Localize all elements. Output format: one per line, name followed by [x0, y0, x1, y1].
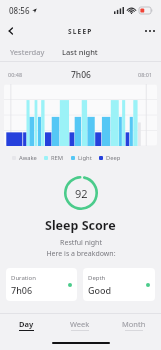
staticText: REM	[51, 154, 64, 162]
staticText: 08:01	[138, 71, 153, 78]
staticText: 00:48	[8, 71, 23, 78]
staticText: Restful night	[60, 238, 102, 248]
button[interactable]: Last night	[53, 42, 107, 62]
button[interactable]	[4, 84, 157, 146]
button[interactable]: Day	[0, 314, 53, 336]
staticText: 92	[75, 186, 88, 201]
button[interactable]: Week	[53, 314, 107, 336]
staticText: 7h06	[71, 69, 91, 81]
staticText: Good	[88, 284, 112, 296]
staticText: SLEEP	[68, 27, 93, 36]
staticText: Sleep Score	[45, 217, 116, 234]
button[interactable]: More options	[139, 20, 161, 42]
staticText: Day	[19, 319, 34, 329]
staticText: Light	[78, 154, 92, 162]
staticText: Awake	[19, 154, 37, 162]
staticText: Week	[70, 319, 90, 329]
staticText: Last night	[62, 47, 98, 57]
button[interactable]: Duration	[6, 268, 77, 301]
staticText: Deep	[106, 154, 121, 162]
staticText: Month	[122, 319, 146, 329]
staticText: Yesterday	[10, 47, 45, 57]
staticText: 08:56	[9, 5, 30, 16]
button[interactable]: Month	[107, 314, 161, 336]
staticText: Here is a breakdown:	[46, 249, 116, 259]
button[interactable]: Yesterday	[0, 42, 53, 62]
staticText: 7h06	[11, 284, 33, 296]
staticText: Duration	[11, 274, 36, 282]
button[interactable]: Back	[0, 20, 22, 42]
button[interactable]: Depth	[83, 268, 155, 301]
staticText: Depth	[88, 274, 106, 282]
